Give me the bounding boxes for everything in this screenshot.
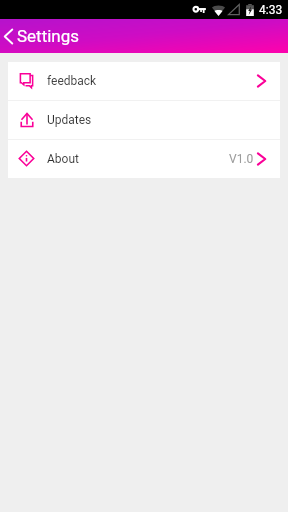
button[interactable]: About: [8, 140, 280, 178]
button[interactable]: feedback: [8, 62, 280, 100]
button[interactable]: Back: [0, 19, 17, 53]
staticText: 4:33: [259, 3, 283, 17]
staticText: Settings: [17, 26, 80, 46]
staticText: V1.0: [229, 152, 254, 166]
button[interactable]: Updates: [8, 101, 280, 139]
staticText: Updates: [47, 113, 92, 127]
staticText: feedback: [47, 74, 97, 88]
staticText: About: [47, 152, 79, 166]
